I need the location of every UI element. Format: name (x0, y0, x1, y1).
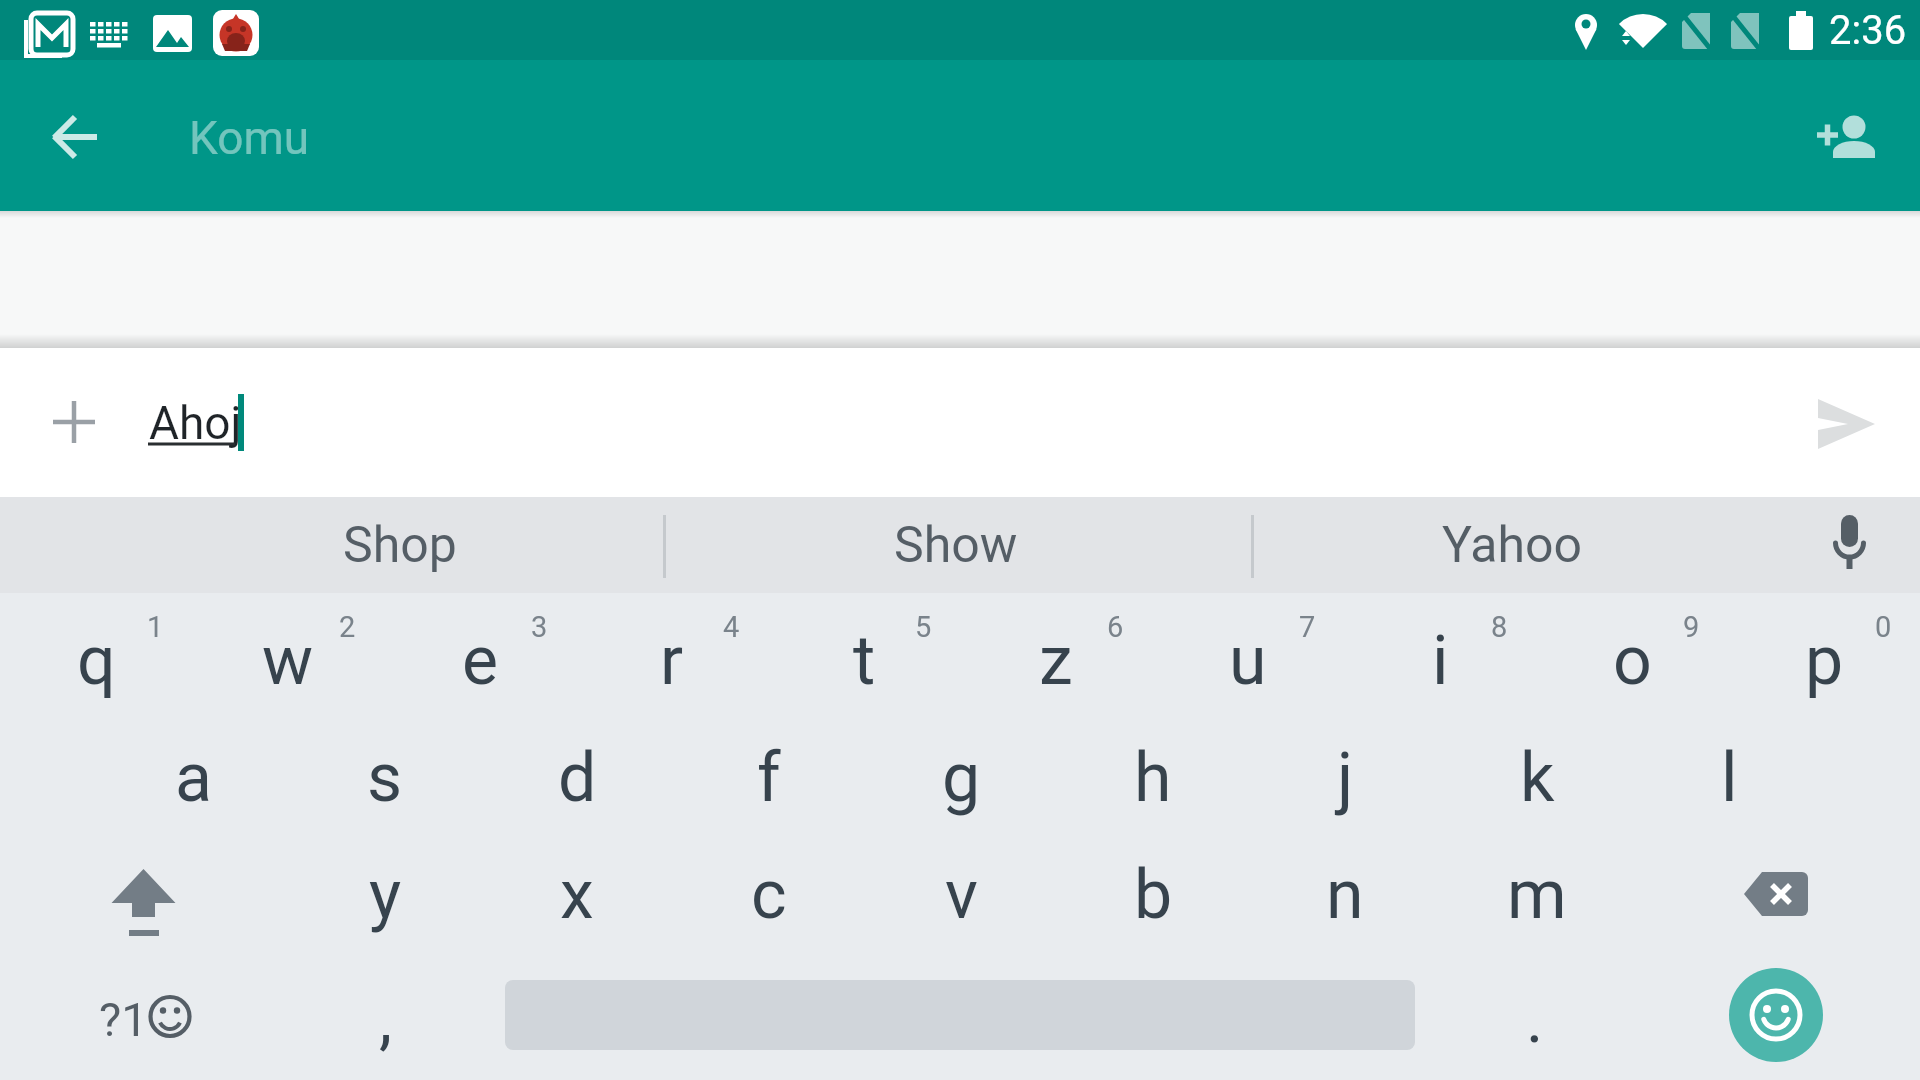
button[interactable] (1712, 847, 1840, 949)
button[interactable]: t (768, 602, 960, 719)
staticText: g (942, 738, 981, 818)
staticText: j (1337, 738, 1354, 818)
button[interactable]: Yahoo (1247, 497, 1777, 593)
staticText: 1 (147, 610, 164, 644)
staticText: Show (894, 516, 1018, 575)
staticText: p (1805, 621, 1844, 701)
staticText: Shop (343, 516, 457, 575)
staticText: r (660, 621, 684, 701)
staticText: 5 (915, 610, 932, 644)
staticText: c (751, 855, 787, 935)
button[interactable]: j (1249, 719, 1441, 836)
staticText: Yahoo (1442, 516, 1583, 575)
button[interactable]: w (192, 602, 384, 719)
staticText: 2 (339, 610, 356, 644)
staticText: v (945, 855, 978, 935)
staticText: m (1507, 855, 1567, 935)
button[interactable] (1729, 968, 1823, 1062)
staticText: 7 (1299, 610, 1316, 644)
staticText: h (1134, 738, 1172, 818)
button[interactable]: ?1 (75, 959, 215, 1080)
staticText: y (369, 855, 402, 935)
button[interactable]: r (576, 602, 768, 719)
staticText: l (1721, 738, 1738, 818)
staticText: 8 (1491, 610, 1508, 644)
staticText: 2:36 (1829, 7, 1907, 54)
button[interactable]: v (865, 836, 1057, 953)
staticText: o (1613, 621, 1652, 701)
button[interactable]: p (1728, 602, 1920, 719)
staticText: Komu (189, 111, 310, 165)
staticText: , (379, 981, 392, 1058)
staticText: Ahoj (149, 396, 242, 450)
button[interactable]: m (1441, 836, 1633, 953)
button[interactable] (1800, 399, 1880, 449)
button[interactable] (1814, 507, 1886, 583)
button[interactable]: u (1152, 602, 1344, 719)
staticText: . (1526, 981, 1544, 1058)
staticText: k (1520, 738, 1555, 818)
staticText: t (853, 621, 876, 701)
button[interactable]: f (673, 719, 865, 836)
staticText: 6 (1107, 610, 1124, 644)
button[interactable] (40, 388, 108, 456)
staticText: u (1229, 621, 1267, 701)
button[interactable]: q (0, 602, 192, 719)
staticText: x (560, 855, 594, 935)
staticText: n (1326, 855, 1364, 935)
staticText: s (367, 738, 403, 818)
button[interactable]: c (673, 836, 865, 953)
button[interactable]: Show (691, 497, 1221, 593)
staticText: i (1432, 621, 1449, 701)
button[interactable]: g (865, 719, 1057, 836)
button[interactable]: d (481, 719, 673, 836)
button[interactable]: x (481, 836, 673, 953)
staticText: q (77, 621, 116, 701)
button[interactable]: Shop (135, 497, 665, 593)
button[interactable]: z (960, 602, 1152, 719)
button[interactable]: h (1057, 719, 1249, 836)
staticText: e (462, 621, 499, 701)
staticText: w (262, 621, 314, 701)
staticText: b (1134, 855, 1173, 935)
button[interactable]: , (289, 959, 481, 1080)
staticText: 9 (1683, 610, 1700, 644)
staticText: z (1039, 621, 1073, 701)
button[interactable] (1810, 100, 1890, 180)
button[interactable]: e (384, 602, 576, 719)
button[interactable]: k (1441, 719, 1633, 836)
button[interactable]: i (1344, 602, 1536, 719)
button[interactable]: y (289, 836, 481, 953)
button[interactable]: s (289, 719, 481, 836)
button[interactable]: b (1057, 836, 1249, 953)
staticText: a (175, 738, 212, 818)
button[interactable]: l (1633, 719, 1825, 836)
button[interactable]: a (97, 719, 289, 836)
button[interactable] (30, 110, 120, 166)
button[interactable] (80, 847, 206, 949)
button[interactable]: n (1249, 836, 1441, 953)
staticText: ?1 (99, 992, 148, 1047)
button[interactable]: o (1536, 602, 1728, 719)
staticText: 3 (531, 610, 548, 644)
button[interactable]: . (1439, 959, 1631, 1080)
staticText: f (757, 738, 781, 818)
staticText: 4 (723, 610, 740, 644)
staticText: 0 (1875, 610, 1892, 644)
staticText: d (558, 738, 597, 818)
